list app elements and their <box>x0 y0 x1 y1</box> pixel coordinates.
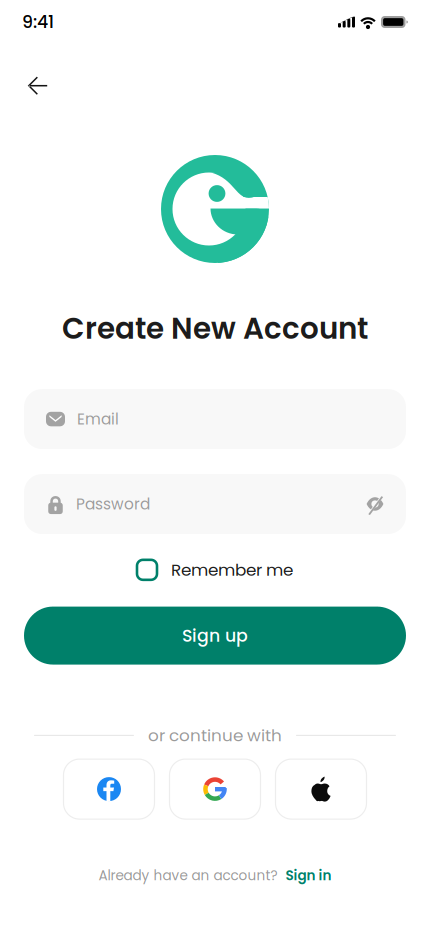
staticText: Email <box>77 408 119 430</box>
staticText: Remember me <box>171 558 293 582</box>
staticText: Sign in <box>285 866 331 885</box>
button[interactable]: Continue with Apple <box>275 759 366 819</box>
staticText: Create New Account <box>62 308 368 349</box>
staticText: Password <box>76 493 150 515</box>
button[interactable]: Sign up <box>24 607 406 665</box>
staticText: 9:41 <box>22 10 54 34</box>
button[interactable]: Remember me <box>137 550 293 590</box>
staticText: or continue with <box>148 724 282 747</box>
staticText: Sign up <box>182 623 248 648</box>
staticText: Already have an account? <box>98 866 277 885</box>
button[interactable]: Sign in <box>285 866 331 885</box>
button[interactable]: Continue with Google <box>169 759 260 819</box>
button[interactable]: Show password <box>366 496 384 512</box>
button[interactable]: Continue with Facebook <box>63 759 154 819</box>
button[interactable]: Back <box>18 66 58 106</box>
